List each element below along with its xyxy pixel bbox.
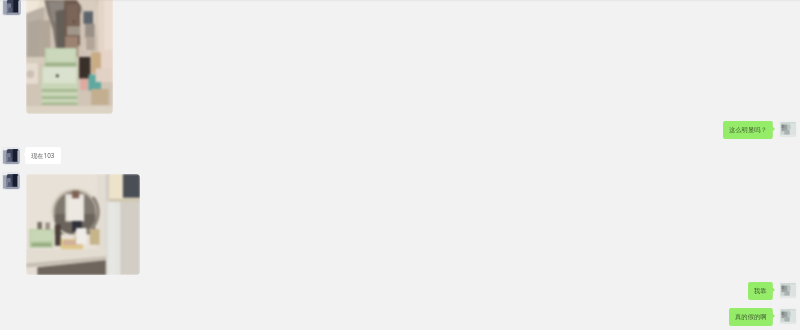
staticText: 我靠 (754, 287, 767, 295)
staticText: 现在103 (31, 151, 55, 160)
button[interactable]: Avatar (2, 147, 20, 165)
button[interactable]: Avatar (2, 172, 20, 190)
staticText: 这么明显吗？ (729, 126, 767, 134)
button[interactable]: Avatar (779, 120, 797, 138)
button[interactable]: Avatar (779, 307, 797, 325)
staticText: 真的假的啊 (735, 313, 767, 321)
button[interactable]: 现在103 (23, 147, 61, 164)
button[interactable]: 这么明显吗？ (723, 121, 775, 139)
button[interactable]: Photo (26, 0, 113, 114)
button[interactable]: 真的假的啊 (729, 308, 775, 326)
button[interactable]: Avatar (779, 281, 797, 299)
button[interactable]: Photo (26, 174, 140, 275)
button[interactable]: 我靠 (748, 282, 775, 300)
button[interactable]: Avatar (2, 0, 21, 16)
